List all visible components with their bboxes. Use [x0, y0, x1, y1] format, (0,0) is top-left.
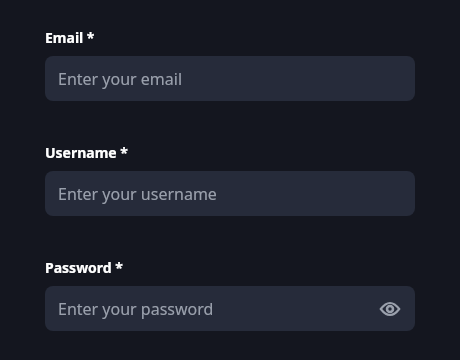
staticText: Enter your username: [58, 183, 217, 205]
button[interactable]: Enter your username: [45, 171, 415, 216]
staticText: Email *: [45, 28, 95, 47]
button[interactable]: Show password: [376, 295, 404, 323]
staticText: Enter your email: [58, 68, 183, 90]
staticText: Username *: [45, 143, 128, 162]
staticText: Password *: [45, 258, 123, 277]
button[interactable]: Enter your password: [45, 286, 415, 331]
button[interactable]: Enter your email: [45, 56, 415, 101]
staticText: Enter your password: [58, 298, 214, 320]
